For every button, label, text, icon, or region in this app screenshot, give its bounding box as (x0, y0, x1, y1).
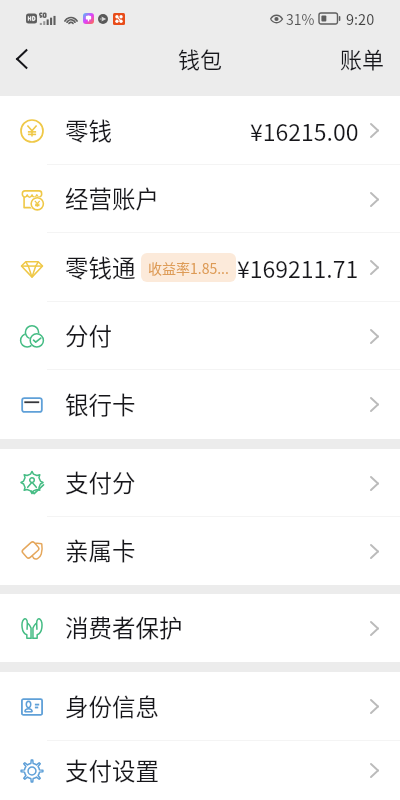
staticText: 经营账户 (65, 181, 159, 215)
staticText: 银行卡 (65, 387, 136, 421)
button[interactable]: 支付分 (0, 449, 400, 517)
button[interactable]: 零钱 (0, 96, 400, 165)
staticText: 31% (286, 9, 315, 29)
staticText: 支付设置 (65, 753, 159, 787)
staticText: 消费者保护 (65, 610, 183, 644)
staticText: ¥169211.71 (237, 251, 359, 284)
staticText: 身份信息 (65, 689, 159, 723)
staticText: 零钱通 (65, 250, 136, 284)
staticText: 9:20 (346, 8, 375, 29)
staticText: 收益率1.85... (148, 258, 229, 278)
button[interactable]: 银行卡 (0, 370, 400, 439)
button[interactable]: Back (0, 37, 44, 81)
button[interactable]: 消费者保护 (0, 594, 400, 662)
staticText: 分付 (65, 318, 112, 352)
button[interactable]: 身份信息 (0, 672, 400, 741)
staticText: ¥16215.00 (250, 114, 359, 147)
button[interactable]: 支付设置 (0, 741, 400, 800)
staticText: 账单 (340, 42, 385, 74)
button[interactable]: 亲属卡 (0, 517, 400, 585)
staticText: 支付分 (65, 465, 136, 499)
staticText: 钱包 (178, 42, 223, 74)
staticText: 亲属卡 (65, 533, 136, 567)
button[interactable]: 经营账户 (0, 165, 400, 233)
button[interactable]: 零钱通 (0, 233, 400, 302)
button[interactable]: 账单 (325, 36, 400, 82)
button[interactable]: 分付 (0, 302, 400, 370)
staticText: 零钱 (65, 113, 112, 147)
